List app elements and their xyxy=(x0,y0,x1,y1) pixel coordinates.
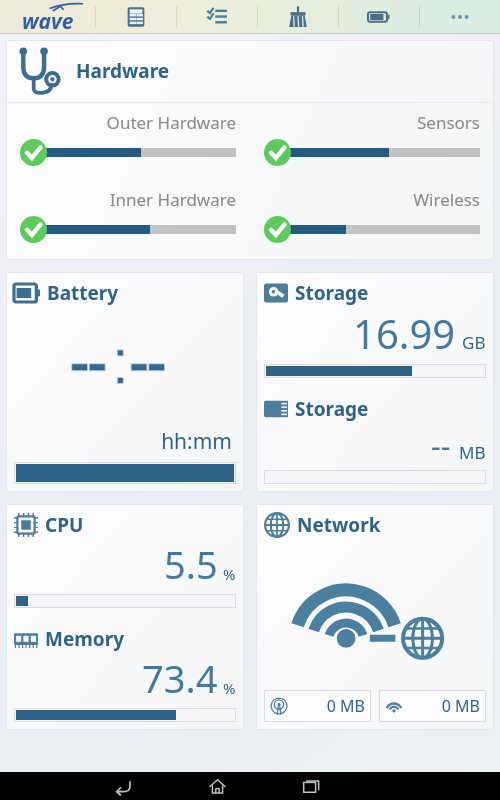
staticText: Battery xyxy=(47,280,119,306)
button[interactable]: Back xyxy=(101,772,145,800)
button[interactable]: More xyxy=(420,0,500,34)
staticText: 5.5 xyxy=(164,538,218,590)
staticText: 0 MB xyxy=(288,695,365,717)
button[interactable]: Battery xyxy=(6,272,244,492)
button[interactable]: wave xyxy=(0,0,95,34)
button[interactable]: CPU xyxy=(6,504,244,730)
staticText: Hardware xyxy=(76,58,170,84)
staticText: 16.99 xyxy=(353,306,456,360)
staticText: 0 MB xyxy=(403,695,480,717)
staticText: hh:mm xyxy=(14,427,232,456)
staticText: Outer Hardware xyxy=(20,111,236,134)
staticText: Sensors xyxy=(264,111,480,134)
staticText: wave xyxy=(22,7,74,36)
staticText: CPU xyxy=(45,512,84,538)
staticText: Storage xyxy=(295,396,369,422)
button[interactable]: Battery xyxy=(339,0,419,34)
staticText: Network xyxy=(297,512,381,538)
staticText: Storage xyxy=(295,280,369,306)
button[interactable]: Recents xyxy=(289,772,333,800)
staticText: Memory xyxy=(45,626,125,652)
button[interactable]: 0 MB xyxy=(379,690,486,722)
button[interactable]: Clean xyxy=(258,0,338,34)
staticText: 73.4 xyxy=(142,652,218,704)
button[interactable]: Storage xyxy=(256,272,494,492)
staticText: % xyxy=(223,564,236,584)
staticText: Inner Hardware xyxy=(20,188,236,211)
button[interactable]: Hardware xyxy=(6,40,494,260)
button[interactable]: Tasks xyxy=(177,0,257,34)
button[interactable]: Home xyxy=(195,772,239,800)
staticText: MB xyxy=(459,441,486,464)
button[interactable]: Network xyxy=(256,504,494,730)
staticText: -- xyxy=(431,425,451,466)
staticText: % xyxy=(223,678,236,698)
button[interactable]: 0 MB xyxy=(264,690,371,722)
staticText: Wireless xyxy=(264,188,480,211)
button[interactable]: Reports xyxy=(96,0,176,34)
staticText: GB xyxy=(462,331,486,354)
